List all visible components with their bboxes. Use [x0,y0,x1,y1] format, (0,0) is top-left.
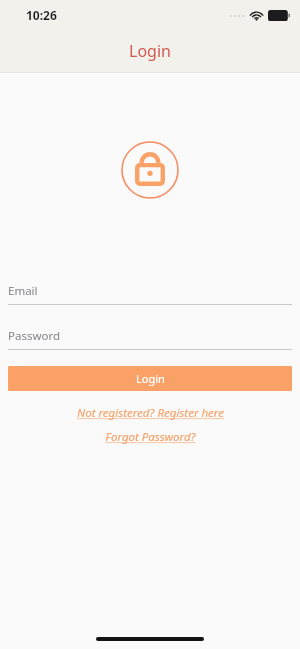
staticText: 10:26 [26,7,57,23]
button[interactable]: Email [0,281,300,305]
button[interactable]: Login [8,366,292,391]
staticText: Password [8,328,61,344]
staticText: Not registered? Register here [77,405,224,421]
staticText: Login [129,40,171,62]
staticText: Email [8,283,38,299]
button[interactable]: Password [0,326,300,350]
staticText: Forgot Password? [105,429,196,445]
button[interactable]: Forgot Password? [0,429,300,445]
staticText: Login [136,371,165,386]
button[interactable]: Not registered? Register here [0,405,300,421]
